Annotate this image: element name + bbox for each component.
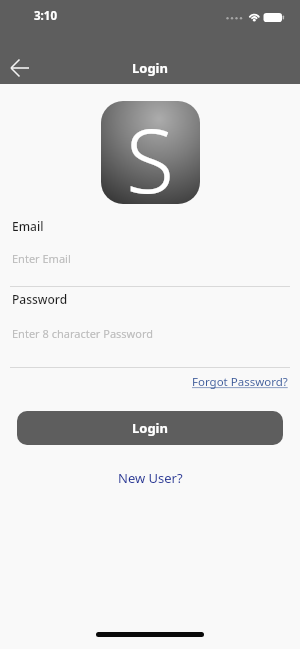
- button[interactable]: [0, 48, 40, 88]
- staticText: 3:10: [34, 8, 57, 24]
- staticText: Enter Email: [12, 251, 71, 266]
- staticText: New User?: [118, 469, 183, 487]
- staticText: S: [126, 101, 175, 202]
- staticText: Email: [12, 218, 44, 234]
- staticText: Login: [132, 59, 168, 77]
- button[interactable]: New User?: [118, 469, 183, 487]
- staticText: Login: [132, 419, 168, 437]
- staticText: Enter 8 character Password: [12, 326, 153, 341]
- button[interactable]: Forgot Password?: [192, 374, 288, 390]
- staticText: Forgot Password?: [192, 374, 288, 390]
- staticText: Password: [12, 291, 68, 307]
- button[interactable]: Login: [17, 411, 283, 445]
